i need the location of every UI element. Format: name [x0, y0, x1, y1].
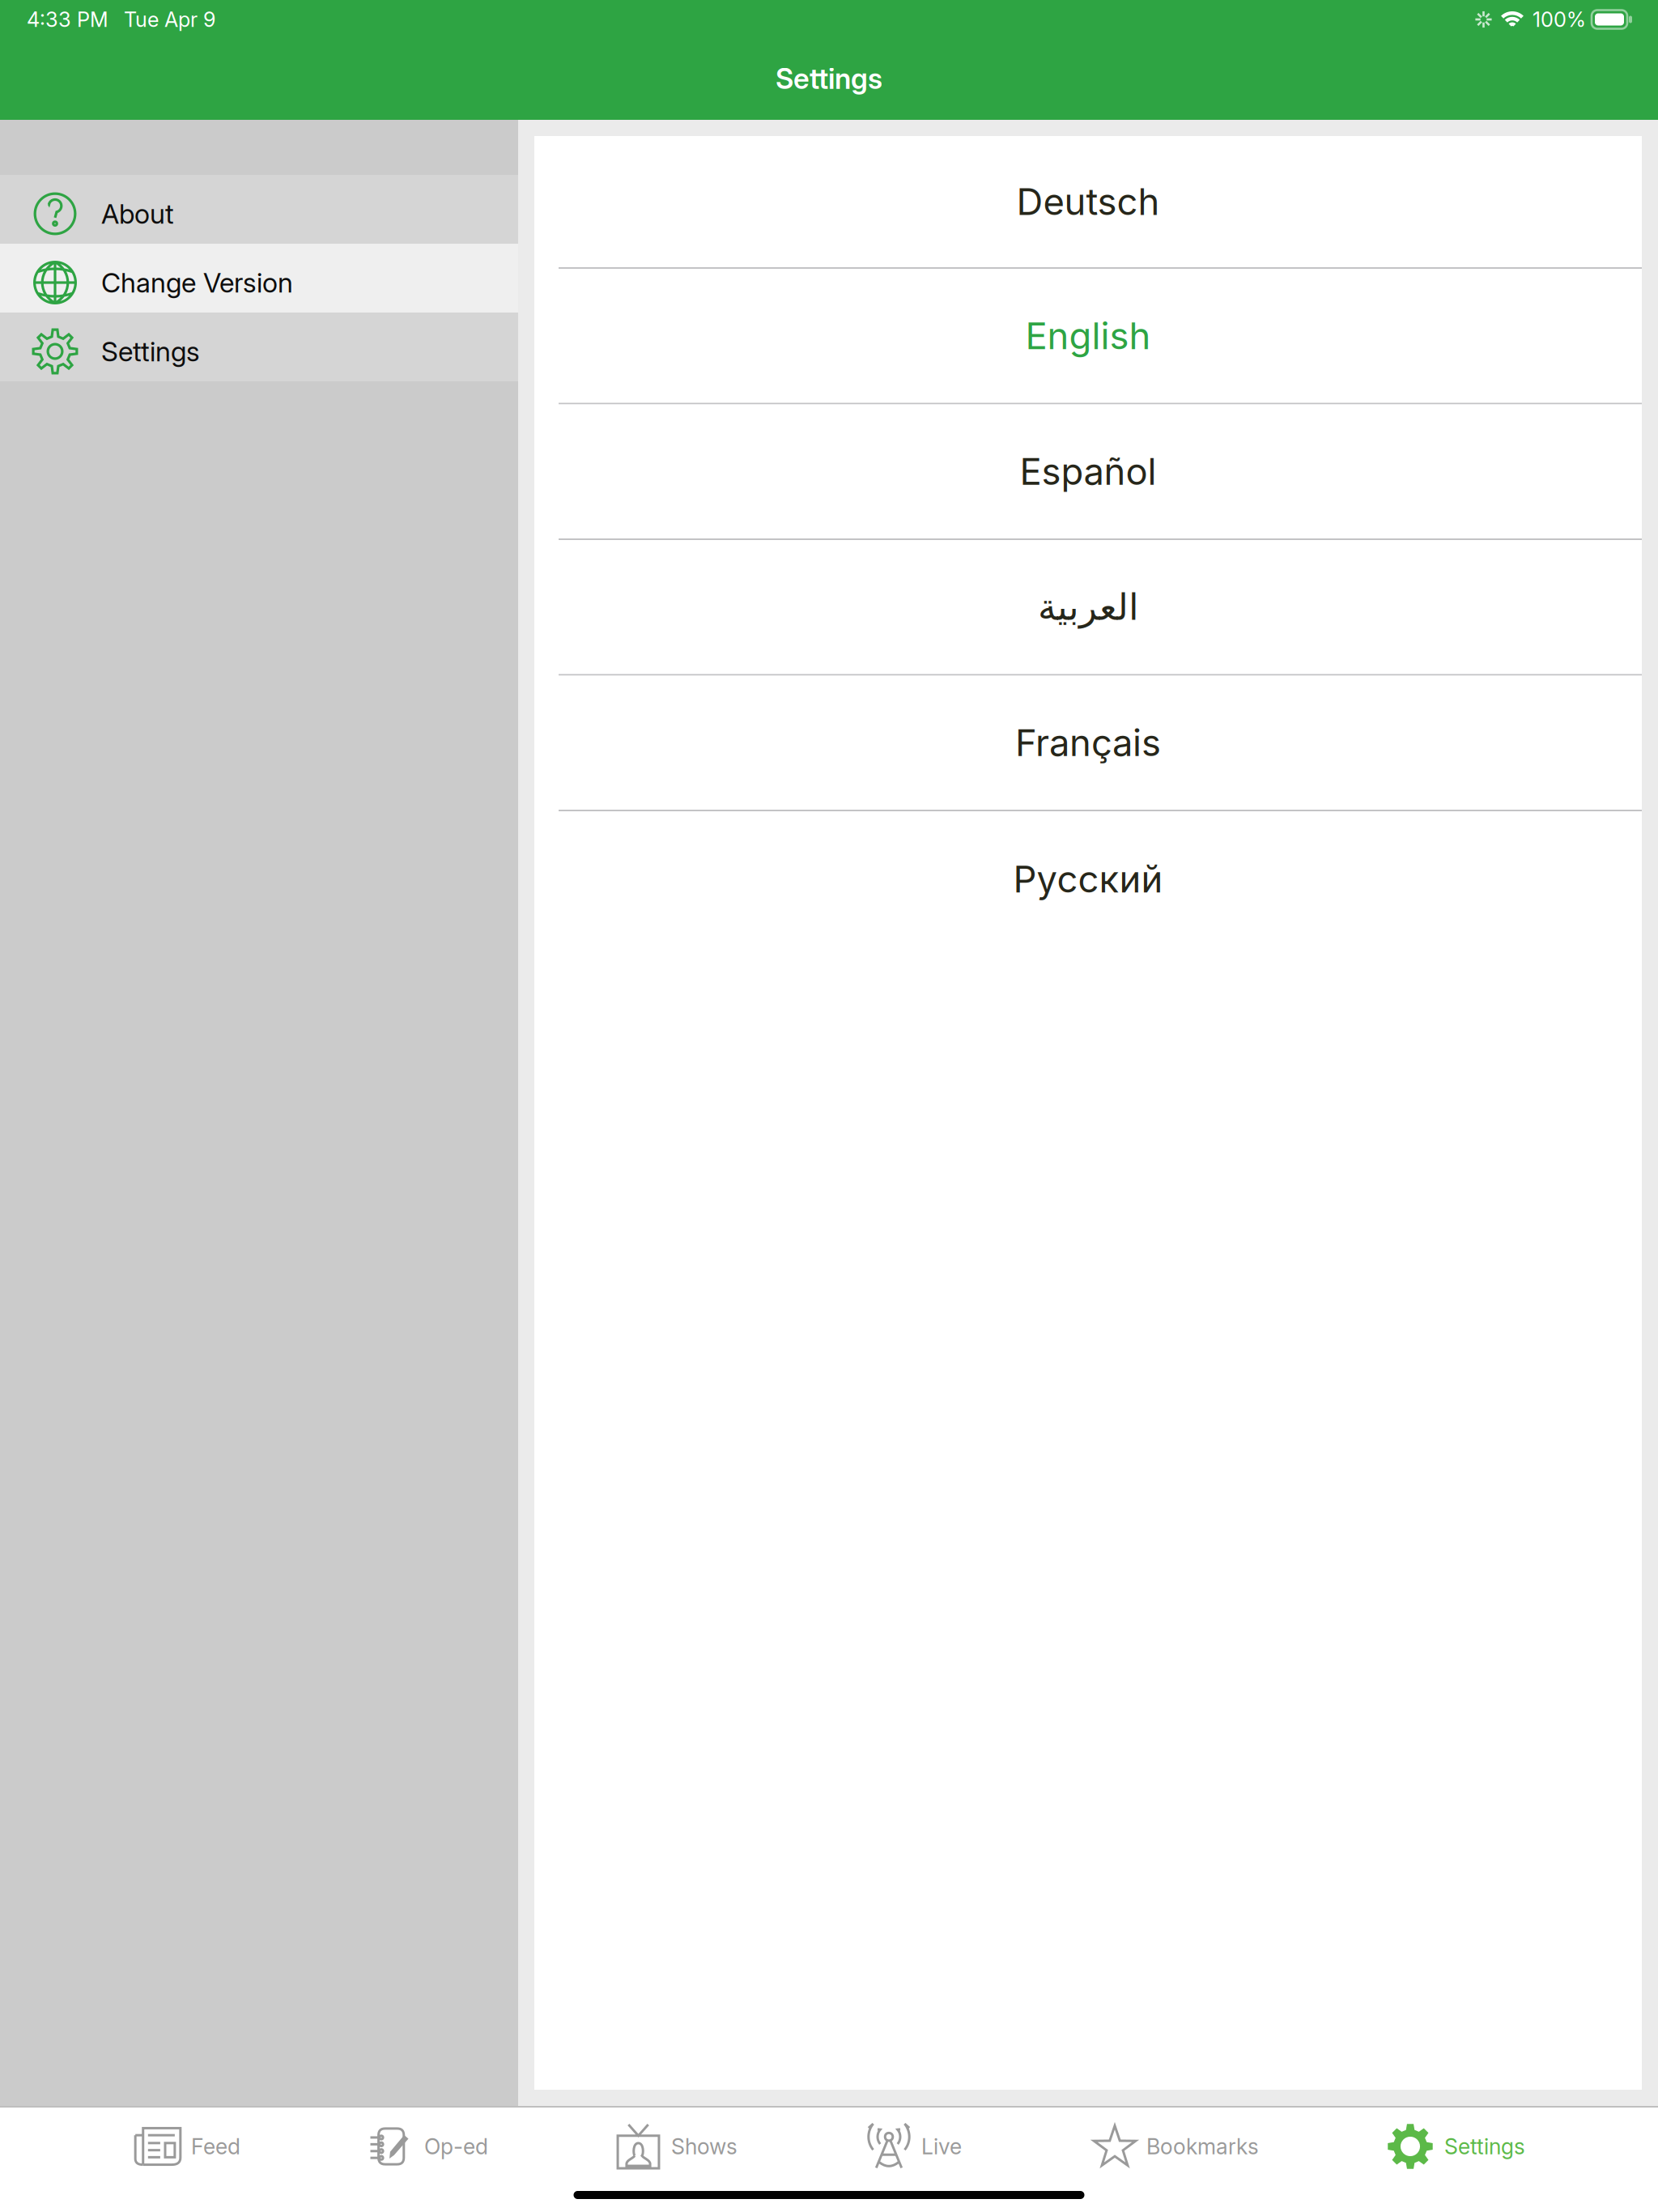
button[interactable]: Bookmarks	[1090, 2117, 1259, 2176]
button[interactable]: Change Version	[0, 244, 518, 313]
staticText: Bookmarks	[1146, 2133, 1259, 2160]
staticText: Shows	[671, 2133, 738, 2160]
staticText: 4:33 PM	[27, 7, 108, 32]
button[interactable]: Русский	[534, 811, 1642, 947]
button[interactable]: العربية	[534, 540, 1642, 676]
staticText: Settings	[776, 62, 882, 96]
staticText: العربية	[1037, 586, 1139, 628]
button[interactable]: Settings	[0, 313, 518, 381]
staticText: Русский	[1013, 857, 1163, 901]
staticText: 100%	[1533, 7, 1586, 32]
staticText: English	[1025, 314, 1151, 358]
staticText: Español	[1020, 449, 1156, 494]
staticText: Feed	[191, 2133, 240, 2160]
staticText: Change Version	[101, 266, 293, 299]
staticText: Op-ed	[424, 2133, 488, 2160]
button[interactable]: Op-ed	[369, 2117, 488, 2176]
staticText: Settings	[1444, 2133, 1525, 2160]
staticText: Français	[1015, 720, 1161, 765]
button[interactable]: English	[534, 269, 1642, 404]
button[interactable]: Feed	[134, 2117, 240, 2176]
staticText: Tue Apr 9	[124, 7, 215, 32]
button[interactable]: Español	[534, 404, 1642, 540]
button[interactable]: Settings	[1388, 2117, 1525, 2176]
staticText: Settings	[101, 335, 200, 368]
button[interactable]: Shows	[617, 2117, 738, 2176]
button[interactable]: Français	[534, 676, 1642, 811]
staticText: Live	[921, 2133, 962, 2160]
staticText: About	[101, 197, 174, 230]
button[interactable]: Deutsch	[534, 136, 1642, 269]
button[interactable]: About	[0, 175, 518, 244]
button[interactable]: Live	[866, 2117, 962, 2176]
staticText: Deutsch	[1016, 179, 1160, 224]
